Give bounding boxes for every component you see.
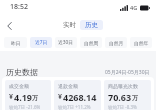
staticText: 近7日	[35, 39, 48, 46]
staticText: 18:52	[10, 2, 28, 12]
staticText: 自然月	[109, 40, 124, 46]
button[interactable]: 近7日	[30, 37, 52, 48]
staticText: 4G	[130, 4, 138, 11]
staticText: 万	[132, 94, 138, 102]
staticText: 万	[32, 94, 38, 102]
button[interactable]: 昨日	[4, 37, 27, 48]
button[interactable]: 实时	[63, 20, 76, 30]
button[interactable]: 退款金额	[54, 80, 101, 110]
staticText: 较前7日 -21.6%	[9, 104, 41, 110]
staticText: 历史	[85, 21, 98, 29]
staticText: 自然年	[134, 40, 149, 46]
staticText: 实时	[63, 21, 76, 29]
staticText: 较前7日 +11.2%	[58, 104, 91, 110]
button[interactable]: 自然周	[80, 37, 102, 48]
button[interactable]: 历史	[80, 20, 103, 30]
staticText: 较前7日 -8.3%	[108, 104, 137, 110]
staticText: 昨日	[11, 40, 21, 46]
staticText: 成交金额	[9, 83, 29, 89]
button[interactable]: Back	[3, 19, 16, 32]
staticText: 退款金额	[58, 83, 78, 89]
button[interactable]: 商品曝光次数	[104, 80, 151, 110]
button[interactable]: 近30日	[55, 37, 77, 48]
staticText: 商品曝光次数	[108, 83, 138, 89]
button[interactable]: 成交金额	[5, 80, 51, 110]
button[interactable]: 自然月	[105, 37, 127, 48]
staticText: 05月24日-05月30日	[105, 69, 150, 76]
staticText: ¥	[9, 92, 14, 102]
staticText: 近30日	[58, 39, 74, 46]
staticText: ¥	[58, 92, 63, 102]
staticText: 4268.14	[63, 91, 97, 103]
staticText: 4.19	[14, 91, 32, 103]
staticText: 自然周	[84, 40, 99, 46]
staticText: 70.63	[108, 91, 132, 103]
button[interactable]: 自然年	[130, 37, 152, 48]
staticText: 历史数据	[6, 67, 38, 77]
